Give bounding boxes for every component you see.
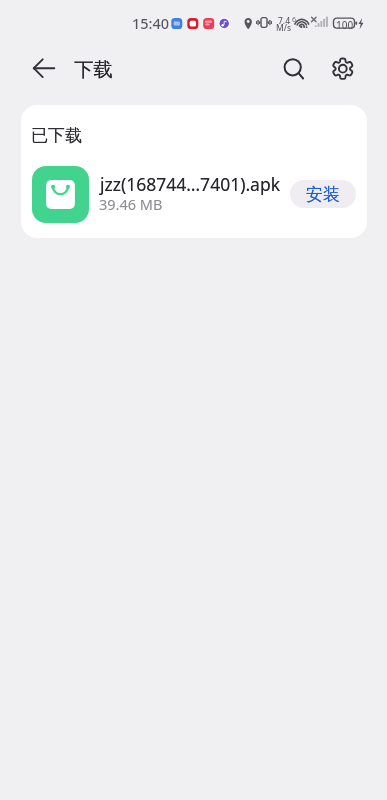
staticText: 已下载 — [31, 125, 82, 146]
staticText: 安装 — [306, 184, 340, 205]
button[interactable]: 安装 — [290, 180, 356, 208]
staticText: 15:40 — [132, 13, 170, 33]
staticText: 安装 — [306, 184, 340, 205]
button[interactable]: jzz(168744…7401).apk — [21, 159, 367, 229]
staticText: jzz(168744…7401).apk — [100, 172, 281, 196]
button[interactable]: Search — [272, 46, 314, 88]
staticText: 39.46 MB — [99, 194, 163, 214]
staticText: 已下载 — [31, 125, 82, 146]
staticText: 6 — [292, 15, 297, 25]
staticText: 下载 — [74, 57, 113, 82]
staticText: 7.4 — [278, 15, 291, 27]
staticText: 下载 — [74, 57, 113, 82]
button[interactable]: Settings — [322, 46, 364, 88]
staticText: jzz(168744…7401).apk — [100, 172, 281, 196]
staticText: M/s — [276, 22, 292, 34]
button[interactable]: Back — [23, 46, 65, 88]
staticText: 100 — [336, 18, 354, 32]
